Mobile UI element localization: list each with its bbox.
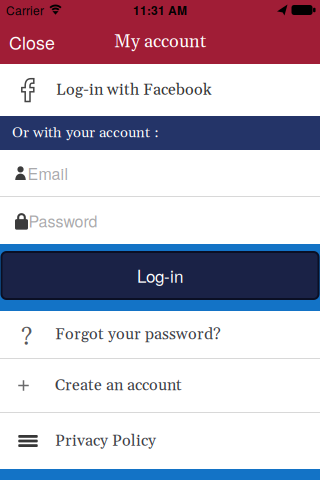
staticText: My account xyxy=(114,31,206,53)
staticText: 11:31 AM xyxy=(133,1,187,19)
staticText: Email xyxy=(27,161,68,184)
staticText: ? xyxy=(21,323,32,353)
button[interactable]: Close xyxy=(0,20,55,64)
staticText: Carrier xyxy=(6,1,44,19)
button[interactable]: Create an account xyxy=(0,359,320,412)
staticText: Log-in xyxy=(137,263,183,288)
button[interactable]: Log-in xyxy=(1,252,318,299)
staticText: Close xyxy=(9,29,55,55)
staticText: Forgot your password? xyxy=(55,324,221,345)
staticText: Log-in with Facebook xyxy=(56,80,212,100)
button[interactable]: ? xyxy=(0,311,320,358)
button[interactable]: Email xyxy=(0,150,320,196)
staticText: Privacy Policy xyxy=(55,431,156,451)
staticText: Create an account xyxy=(55,375,182,396)
button[interactable]: Log-in with Facebook xyxy=(0,64,320,116)
staticText: Or with your account : xyxy=(12,124,159,142)
button[interactable]: Privacy Policy xyxy=(0,413,320,469)
staticText: Password xyxy=(28,209,97,232)
button[interactable]: Password xyxy=(0,197,320,244)
